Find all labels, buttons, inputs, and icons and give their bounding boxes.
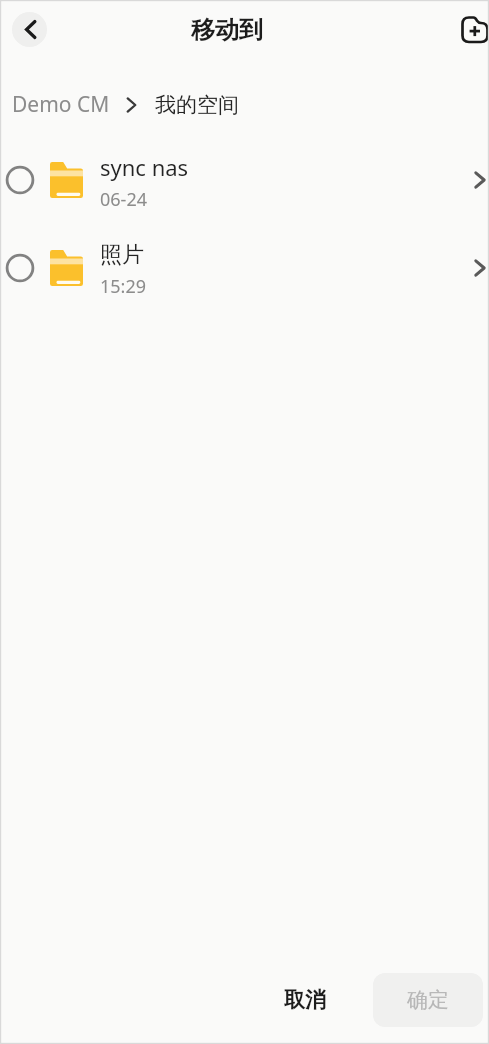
button[interactable]: 我的空间 [155,92,239,118]
button[interactable]: Select sync nas [0,136,489,224]
button[interactable]: Back [12,12,47,47]
staticText: 确定 [407,987,449,1013]
staticText: 我的空间 [155,92,239,118]
staticText: 照片 [100,241,144,269]
staticText: 移动到 [191,15,263,45]
button[interactable]: Select 照片 [0,224,489,312]
button[interactable]: 取消 [268,973,341,1027]
staticText: 取消 [284,987,326,1013]
button[interactable]: 确定 [373,973,483,1027]
button[interactable]: Demo CM [12,90,110,119]
staticText: 06-24 [100,187,147,212]
button[interactable]: Select 照片 [0,224,40,312]
staticText: Demo CM [12,90,110,119]
button[interactable]: New folder [443,7,489,53]
button[interactable]: Select sync nas [0,136,40,224]
staticText: sync nas [100,152,189,182]
staticText: 15:29 [100,274,147,299]
